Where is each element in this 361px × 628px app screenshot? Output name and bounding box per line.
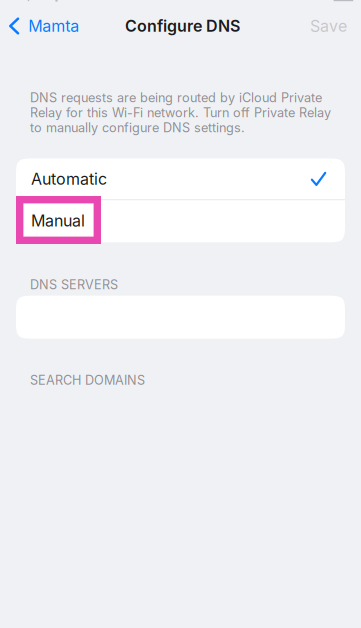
staticText: SEARCH DOMAINS [30,372,145,388]
button[interactable]: Manual [16,199,345,242]
button[interactable]: Save [300,7,357,45]
staticText: DNS SERVERS [30,277,118,292]
staticText: Automatic [31,169,107,189]
staticText: Configure DNS [125,16,240,36]
button[interactable]: Mamta [0,7,87,45]
staticText: Mamta [28,16,79,36]
button[interactable]: Automatic [16,158,345,199]
staticText: DNS requests are being routed by iCloud … [30,90,331,135]
staticText: Save [310,16,347,36]
staticText: Manual [31,211,85,230]
